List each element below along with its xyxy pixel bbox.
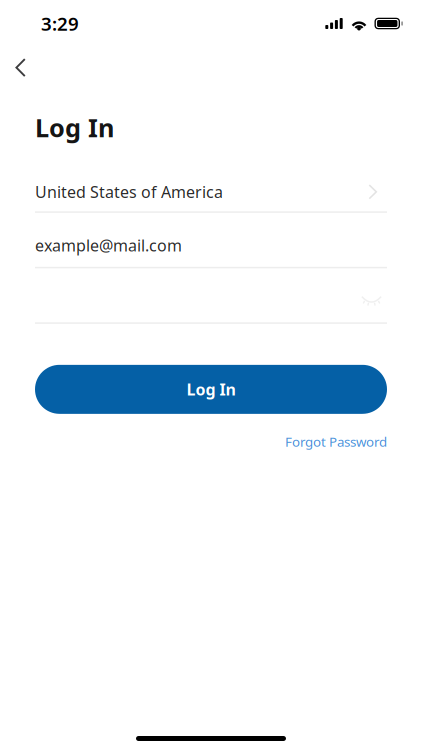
button[interactable]: example@mail.com xyxy=(0,213,422,268)
button[interactable]: Log In xyxy=(35,365,387,414)
staticText: United States of America xyxy=(35,181,223,202)
button[interactable]: Show password xyxy=(361,295,387,307)
button[interactable]: Forgot Password xyxy=(285,433,387,450)
staticText: example@mail.com xyxy=(35,235,182,256)
button[interactable]: United States of America xyxy=(0,144,422,213)
button[interactable]: Back xyxy=(0,47,40,85)
staticText: Log In xyxy=(35,111,114,144)
staticText: 3:29 xyxy=(41,11,79,36)
staticText: Log In xyxy=(186,379,235,400)
staticText: Forgot Password xyxy=(285,433,387,450)
